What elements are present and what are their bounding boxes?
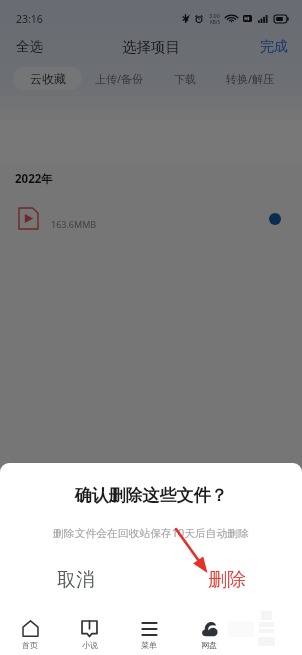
button[interactable]: 全选 (0, 38, 43, 55)
staticText: 2022年 (15, 171, 53, 187)
staticText: 3.00 (209, 12, 220, 19)
button[interactable]: 完成 (260, 38, 302, 56)
staticText: 菜单 (141, 640, 157, 650)
staticText: 确认删除这些文件？ (0, 485, 302, 506)
button[interactable]: 163.6MMB (0, 195, 302, 241)
button[interactable]: 下载 (150, 67, 220, 90)
staticText: 小说 (82, 640, 98, 650)
staticText: 转换/解压 (226, 71, 275, 86)
staticText: KB/S (210, 19, 220, 25)
button[interactable]: 网盘 (179, 599, 239, 650)
staticText: 23:16 (16, 12, 43, 26)
staticText: 网盘 (201, 640, 217, 650)
button[interactable]: 上传/备份 (84, 67, 154, 90)
staticText: 首页 (22, 640, 38, 650)
button[interactable]: 菜单 (119, 599, 179, 650)
button[interactable]: 转换/解压 (215, 67, 285, 90)
button[interactable]: 首页 (0, 599, 60, 650)
staticText: 删除文件会在回收站保存10天后自动删除 (0, 525, 302, 540)
staticText: 云收藏 (30, 71, 66, 86)
button[interactable]: 小说 (60, 599, 119, 650)
staticText: 删除 (208, 568, 246, 592)
button[interactable]: 删除 (151, 558, 302, 599)
staticText: 选择项目 (122, 38, 180, 56)
staticText: 取消 (57, 568, 95, 592)
staticText: 163.6MMB (51, 218, 97, 230)
button[interactable]: 取消 (0, 558, 151, 599)
staticText: 上传/备份 (95, 71, 144, 86)
staticText: 下载 (174, 72, 196, 86)
button[interactable]: 云收藏 (13, 67, 82, 90)
